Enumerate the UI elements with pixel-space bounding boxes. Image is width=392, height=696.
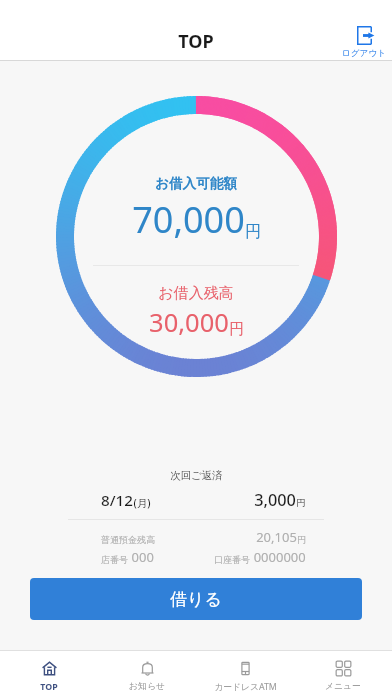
staticText: 30,000 <box>149 305 229 340</box>
staticText: 0000000 <box>250 548 306 566</box>
staticText: お借入残高 <box>158 284 234 303</box>
staticText: TOP <box>40 681 58 693</box>
staticText: 円 <box>297 534 306 545</box>
button[interactable]: Logout <box>338 26 390 59</box>
staticText: 借りる <box>170 589 222 610</box>
staticText: 3,000 <box>254 489 296 511</box>
staticText: 20,105 <box>256 528 297 546</box>
button[interactable]: カードレスATM <box>196 661 294 693</box>
staticText: ログアウト <box>342 48 386 59</box>
staticText: 8/12 <box>101 490 133 511</box>
staticText: 普通預金残高 <box>101 534 155 545</box>
staticText: メニュー <box>325 681 361 692</box>
button[interactable]: お知らせ <box>98 661 196 692</box>
staticText: TOP <box>178 29 214 54</box>
button[interactable]: TOP <box>0 661 98 693</box>
staticText: 次回ご返済 <box>170 469 223 482</box>
staticText: 店番号 <box>101 554 128 565</box>
button[interactable]: メニュー <box>294 661 392 692</box>
button[interactable]: 借りる <box>30 578 362 620</box>
staticText: 70,000 <box>132 195 245 244</box>
staticText: 円 <box>229 320 244 339</box>
staticText: お借入可能額 <box>155 175 237 192</box>
staticText: 口座番号 <box>214 554 250 565</box>
staticText: (月) <box>133 496 151 510</box>
staticText: 000 <box>128 548 154 566</box>
staticText: 円 <box>245 222 261 242</box>
staticText: 円 <box>296 497 306 509</box>
staticText: カードレスATM <box>214 681 277 693</box>
staticText: お知らせ <box>129 681 165 692</box>
